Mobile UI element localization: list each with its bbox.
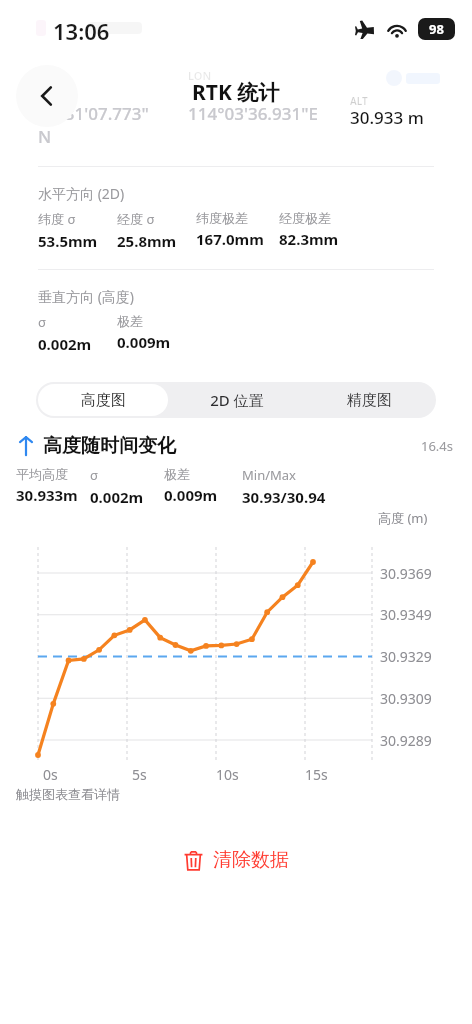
staticText: 30.9309 <box>380 689 432 708</box>
staticText: 0.002m <box>38 334 92 354</box>
staticText: RTK 统计 <box>192 78 280 107</box>
staticText: 25.8mm <box>117 231 177 251</box>
staticText: 平均高度 <box>16 466 68 482</box>
staticText: 纬度 σ <box>38 210 76 228</box>
button[interactable]: 清除数据 <box>170 840 303 880</box>
staticText: 167.0mm <box>196 229 264 249</box>
staticText: σ <box>38 313 46 331</box>
staticText: 0.002m <box>90 487 144 507</box>
staticText: 10s <box>216 765 239 784</box>
staticText: 30.9289 <box>380 731 432 750</box>
staticText: 高度 (m) <box>378 509 428 527</box>
button[interactable]: 精度图 <box>305 384 434 416</box>
staticText: 30.933m <box>16 485 78 505</box>
staticText: 经度 σ <box>117 210 155 228</box>
staticText: 高度图 <box>81 391 126 410</box>
staticText: 13:06 <box>53 16 110 46</box>
staticText: 极差 <box>117 313 143 329</box>
button[interactable]: 2D 位置 <box>172 384 301 416</box>
staticText: 22°31'07.773" N <box>38 102 149 148</box>
button[interactable]: 高度图 <box>38 384 168 416</box>
staticText: 水平方向 (2D) <box>38 184 125 203</box>
staticText: LON <box>188 68 212 83</box>
staticText: 53.5mm <box>38 231 98 251</box>
staticText: 0s <box>43 765 58 784</box>
staticText: 30.9369 <box>380 564 432 583</box>
staticText: 82.3mm <box>279 229 339 249</box>
staticText: 30.933 m <box>350 106 424 129</box>
staticText: 高度随时间变化 <box>43 434 176 458</box>
staticText: 16.4s <box>421 437 454 455</box>
staticText: 极差 <box>164 466 190 482</box>
staticText: 98 <box>429 20 444 38</box>
staticText: σ <box>90 466 98 484</box>
staticText: 114°03'36.931"E <box>188 102 318 125</box>
staticText: 5s <box>132 765 147 784</box>
staticText: 垂直方向 (高度) <box>38 287 135 306</box>
staticText: ALT <box>350 94 368 108</box>
staticText: 0.009m <box>117 332 171 352</box>
button[interactable]: Back <box>16 65 78 127</box>
staticText: 30.9329 <box>380 647 432 666</box>
staticText: 触摸图表查看详情 <box>16 786 120 802</box>
staticText: 清除数据 <box>213 848 289 872</box>
staticText: 30.93/30.94 <box>242 487 326 507</box>
staticText: 2D 位置 <box>210 390 264 410</box>
staticText: Min/Max <box>242 466 296 484</box>
staticText: 纬度极差 <box>196 210 248 226</box>
staticText: 精度图 <box>347 391 392 410</box>
staticText: 0.009m <box>164 485 218 505</box>
staticText: 15s <box>305 765 328 784</box>
staticText: 30.9349 <box>380 605 432 624</box>
staticText: 经度极差 <box>279 210 331 226</box>
